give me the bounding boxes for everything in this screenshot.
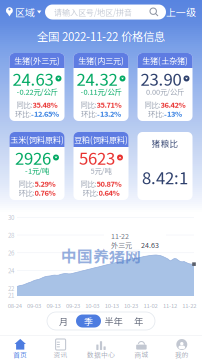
staticText: 10-03 [85, 301, 99, 310]
staticText: 5元/吨 [90, 165, 111, 176]
staticText: 生猪(土杂猪) [142, 55, 188, 66]
staticText: 11-12 [163, 301, 177, 310]
staticText: 10-23 [124, 301, 138, 310]
staticText: 30 [8, 213, 14, 222]
staticText: 我的 [175, 350, 189, 359]
staticText: 26 [8, 248, 14, 257]
staticText: 09-23 [66, 301, 80, 310]
staticText: 同比: [80, 178, 96, 189]
staticText: -13.2% [97, 108, 121, 119]
staticText: 21 [8, 291, 14, 300]
button[interactable]: 请输入区号/地区/拼音 [44, 0, 167, 24]
staticText: 豆粕(饲料原料) [74, 134, 128, 145]
staticText: 2926 [15, 145, 51, 169]
staticText: 0.64% [98, 187, 119, 198]
button[interactable]: 月 [51, 314, 76, 327]
staticText: 09-13 [46, 301, 60, 310]
staticText: -13% [164, 108, 182, 119]
button[interactable]: 商城 [121, 336, 162, 359]
button[interactable]: 玉米(饲料原料) [9, 132, 64, 200]
staticText: 35.71% [96, 99, 121, 110]
staticText: 22 [8, 284, 14, 293]
staticText: 生猪(外三元) [14, 55, 60, 66]
staticText: 首页 [13, 350, 27, 359]
staticText: 同比: [16, 99, 32, 110]
staticText: 半年 [104, 314, 122, 327]
staticText: 09-03 [27, 301, 41, 310]
staticText: 36.42% [160, 99, 185, 110]
staticText: 08-24 [8, 301, 22, 310]
staticText: 24.32 [76, 66, 117, 90]
staticText: 11-22 [182, 301, 196, 310]
staticText: -0.22元/公斤 [16, 86, 57, 97]
staticText: 10-13 [105, 301, 119, 310]
staticText: 月 [59, 314, 68, 327]
staticText: 环比: [148, 108, 164, 119]
staticText: 50.87% [96, 178, 121, 189]
staticText: 35.48% [32, 99, 57, 110]
staticText: 5.29% [34, 178, 55, 189]
staticText: 5623 [79, 145, 115, 169]
staticText: 玉米(饲料原料) [10, 134, 64, 145]
button[interactable]: 我的 [162, 336, 202, 359]
staticText: 同比: [18, 178, 34, 189]
staticText: -1元/吨 [25, 165, 49, 176]
staticText: 年 [134, 314, 143, 327]
staticText: 28 [8, 231, 14, 239]
button[interactable]: 首页 [0, 336, 40, 359]
staticText: 环比: [15, 108, 31, 119]
button[interactable]: 生猪(外三元) [9, 53, 64, 121]
staticText: 0.00元/公斤 [146, 86, 184, 97]
staticText: 环比: [18, 187, 34, 198]
staticText: 11-22 [111, 231, 129, 241]
staticText: 环比: [82, 187, 98, 198]
staticText: 季 [84, 314, 93, 327]
button[interactable]: 数据中心 [81, 336, 121, 359]
staticText: 区域 [15, 5, 35, 19]
staticText: 资讯 [54, 350, 68, 359]
staticText: 数据中心 [87, 350, 115, 359]
staticText: 商城 [134, 350, 148, 359]
staticText: 8.42:1 [142, 165, 188, 189]
button[interactable]: 区域 [0, 0, 44, 24]
staticText: 0.76% [34, 187, 55, 198]
staticText: 请输入区号/地区/拼音 [54, 6, 132, 18]
staticText: 外三元 [111, 240, 132, 250]
button[interactable]: 上一级 [167, 0, 202, 24]
button[interactable]: 豆粕(饲料原料) [73, 132, 128, 200]
button[interactable]: 年 [126, 314, 151, 327]
staticText: 中国养猪网 [61, 244, 141, 267]
button[interactable]: 半年 [101, 314, 126, 327]
staticText: 生猪(内三元) [78, 55, 124, 66]
staticText: 11-02 [143, 301, 157, 310]
button[interactable]: 猪粮比 [137, 132, 192, 200]
staticText: 24 [8, 266, 14, 275]
staticText: 同比: [144, 99, 160, 110]
button[interactable]: 生猪(内三元) [73, 53, 128, 121]
button[interactable]: 生猪(土杂猪) [137, 53, 192, 121]
staticText: 全国 2022-11-22 价格信息 [37, 28, 165, 44]
staticText: 24.63 [141, 240, 159, 250]
staticText: -0.11元/公斤 [80, 86, 121, 97]
staticText: 环比: [81, 108, 97, 119]
staticText: -12.65% [31, 108, 59, 119]
staticText: 上一级 [166, 5, 196, 19]
staticText: 猪粮比 [151, 137, 178, 149]
button[interactable]: 资讯 [40, 336, 81, 359]
staticText: 同比: [80, 99, 96, 110]
staticText: 24.63 [12, 66, 53, 90]
staticText: 23.90 [140, 66, 181, 90]
button[interactable]: 季 [76, 314, 101, 327]
